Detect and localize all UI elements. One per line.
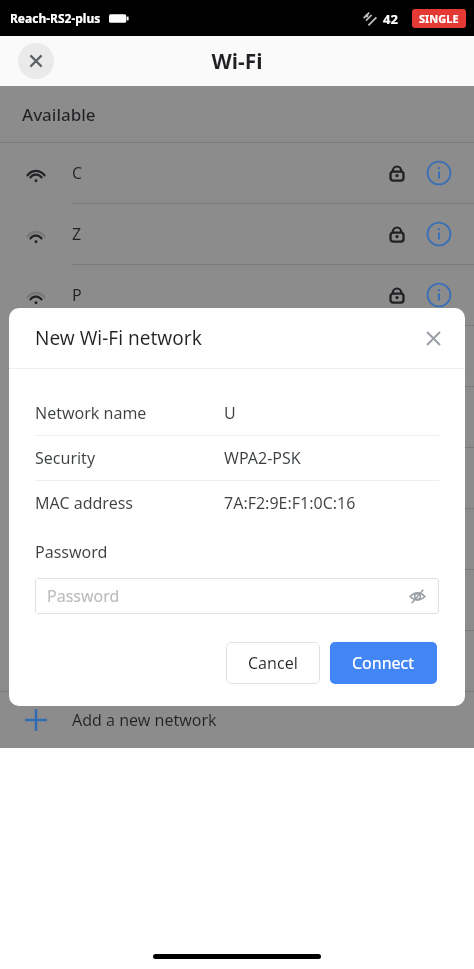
button[interactable]: Network info: [426, 160, 452, 186]
staticText: 7A:F2:9E:F1:0C:16: [224, 492, 356, 514]
button[interactable]: Network info: [426, 587, 452, 613]
staticText: WPA2-PSK: [224, 447, 301, 469]
staticText: Connect: [352, 652, 415, 674]
button[interactable]: Connect: [330, 642, 437, 684]
staticText: P: [72, 284, 82, 306]
button[interactable]: D: [0, 509, 474, 569]
staticText: SINGLE: [419, 11, 459, 26]
staticText: Available: [22, 103, 96, 126]
staticText: New Wi-Fi network: [35, 325, 202, 351]
button[interactable]: Z: [0, 204, 474, 264]
staticText: D: [72, 528, 84, 550]
button[interactable]: Network info: [426, 221, 452, 247]
staticText: 42: [383, 10, 398, 28]
staticText: K: [72, 467, 82, 489]
staticText: Password: [47, 585, 120, 607]
staticText: 7: [72, 589, 82, 611]
staticText: Password: [35, 541, 108, 563]
staticText: Add a new network: [72, 709, 217, 731]
staticText: Z: [72, 223, 82, 245]
button[interactable]: Cancel: [226, 642, 320, 684]
staticText: U: [224, 402, 236, 424]
staticText: M: [72, 406, 87, 428]
staticText: MAC address: [35, 492, 133, 514]
button[interactable]: N: [0, 326, 474, 386]
button[interactable]: Close dialog: [417, 322, 449, 354]
button[interactable]: Close: [18, 43, 54, 79]
button[interactable]: Network info: [426, 282, 452, 308]
staticText: Wi-Fi: [211, 47, 263, 76]
button[interactable]: P: [0, 265, 474, 325]
button[interactable]: 7: [0, 570, 474, 630]
button[interactable]: Network info: [426, 343, 452, 369]
button[interactable]: K: [0, 448, 474, 508]
staticText: C: [72, 162, 83, 184]
button[interactable]: A: [0, 631, 474, 691]
button[interactable]: Network info: [426, 648, 452, 674]
button[interactable]: Add a new network: [0, 692, 474, 748]
button[interactable]: M: [0, 387, 474, 447]
staticText: Reach-RS2-plus: [10, 10, 101, 26]
staticText: Cancel: [248, 652, 298, 674]
staticText: Network name: [35, 402, 147, 424]
button[interactable]: Password: [35, 578, 439, 614]
staticText: Security: [35, 447, 96, 469]
button[interactable]: C: [0, 143, 474, 203]
button[interactable]: Show password: [405, 584, 429, 608]
